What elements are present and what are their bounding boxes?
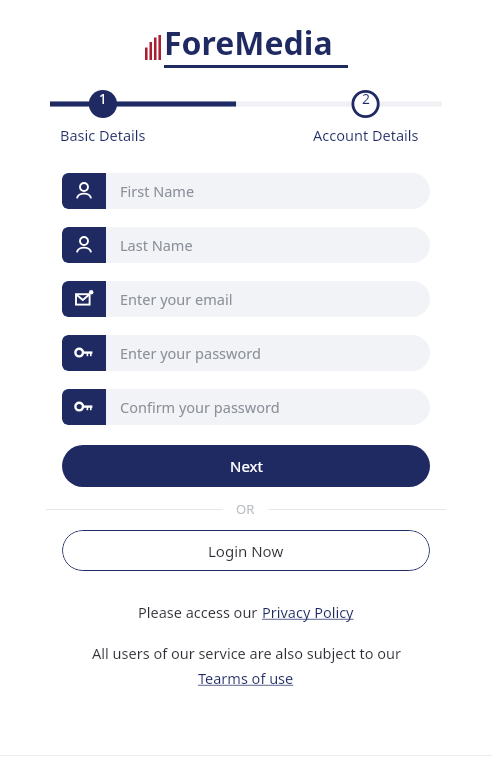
button[interactable]: Enter your password bbox=[62, 335, 430, 371]
other: Enter your email bbox=[62, 281, 106, 317]
button[interactable]: Confirm your password bbox=[62, 389, 430, 425]
other: Enter your password bbox=[62, 335, 106, 371]
button[interactable]: Privacy Policy bbox=[262, 602, 354, 622]
button[interactable]: Last Name bbox=[62, 227, 430, 263]
staticText: OR bbox=[236, 500, 255, 518]
staticText: ForeMedia bbox=[164, 21, 333, 65]
staticText: Privacy Policy bbox=[262, 602, 354, 622]
staticText: Basic Details bbox=[60, 125, 146, 145]
other: Last Name bbox=[62, 227, 106, 263]
button[interactable]: Enter your email bbox=[62, 281, 430, 317]
staticText: Account Details bbox=[313, 125, 419, 145]
other: Confirm your password bbox=[62, 389, 106, 425]
staticText: Tearms of use bbox=[198, 668, 294, 688]
staticText: Next bbox=[230, 456, 263, 476]
staticText: Enter your password bbox=[120, 343, 261, 363]
staticText: 1 bbox=[99, 89, 108, 108]
staticText: Login Now bbox=[208, 541, 284, 561]
staticText: Confirm your password bbox=[120, 397, 280, 417]
staticText: Enter your email bbox=[120, 289, 233, 309]
button[interactable]: Login Now bbox=[62, 530, 430, 571]
staticText: Last Name bbox=[120, 235, 193, 255]
button[interactable]: First Name bbox=[62, 173, 430, 209]
staticText: All users of our service are also subjec… bbox=[92, 643, 401, 663]
other: First Name bbox=[62, 173, 106, 209]
staticText: First Name bbox=[120, 181, 195, 201]
staticText: 2 bbox=[362, 89, 371, 108]
button[interactable]: Tearms of use bbox=[198, 668, 294, 688]
staticText: Please access our bbox=[138, 602, 262, 622]
button[interactable]: Next bbox=[62, 445, 430, 487]
